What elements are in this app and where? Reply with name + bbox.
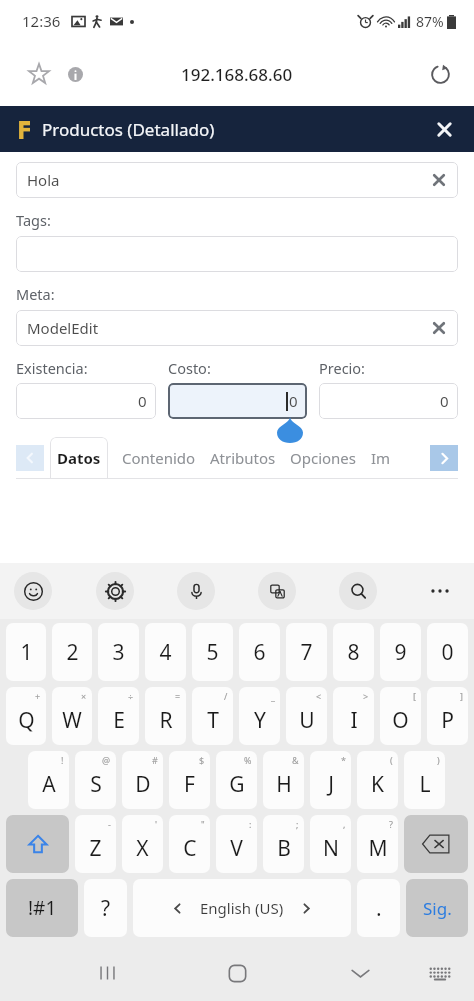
staticText: ] bbox=[460, 690, 463, 702]
button[interactable]: 8 bbox=[333, 623, 374, 681]
button[interactable]: . bbox=[357, 879, 400, 937]
button[interactable]: Datos bbox=[50, 437, 108, 479]
button[interactable]: ? bbox=[84, 879, 127, 937]
button[interactable]: Change keyboard bbox=[420, 953, 460, 993]
button[interactable]: ; bbox=[263, 815, 304, 873]
button[interactable]: # bbox=[122, 751, 163, 809]
button[interactable]: Sig. bbox=[406, 879, 468, 937]
button[interactable]: Hola bbox=[16, 162, 458, 198]
button[interactable]: Reload bbox=[422, 56, 458, 92]
button[interactable]: = bbox=[145, 687, 186, 745]
button[interactable]: < bbox=[286, 687, 327, 745]
staticText: 3 bbox=[112, 638, 125, 667]
staticText: 1 bbox=[20, 638, 33, 667]
button[interactable]: 0 bbox=[319, 383, 458, 419]
button[interactable]: Backspace bbox=[404, 815, 468, 873]
staticText: !#1 bbox=[28, 895, 57, 921]
button[interactable]: $ bbox=[169, 751, 210, 809]
button[interactable]: Keyboard settings bbox=[96, 572, 134, 610]
button[interactable]: 6 bbox=[239, 623, 280, 681]
button[interactable]: 1 bbox=[6, 623, 46, 681]
staticText: × bbox=[81, 690, 87, 702]
staticText: B bbox=[277, 834, 291, 863]
staticText: ) bbox=[437, 754, 440, 766]
button[interactable]: ' bbox=[122, 815, 163, 873]
button[interactable]: , bbox=[310, 815, 351, 873]
button[interactable]: Clear text bbox=[428, 169, 450, 191]
button[interactable]: Im bbox=[371, 437, 391, 479]
staticText: . bbox=[376, 894, 382, 923]
button[interactable]: English (US) bbox=[133, 879, 351, 937]
button[interactable]: Recent apps bbox=[85, 951, 129, 995]
button[interactable]: Previous tabs bbox=[16, 445, 44, 471]
staticText: Q bbox=[18, 706, 35, 735]
staticText: + bbox=[35, 690, 41, 702]
button[interactable]: Translate bbox=[258, 572, 296, 610]
staticText: Sig. bbox=[423, 897, 452, 920]
button[interactable]: Atributos bbox=[210, 437, 276, 479]
button[interactable]: Home bbox=[214, 950, 260, 996]
button[interactable]: 4 bbox=[145, 623, 186, 681]
staticText: % bbox=[244, 754, 252, 766]
button[interactable]: Next tabs bbox=[430, 445, 458, 471]
staticText: English (US) bbox=[200, 898, 284, 918]
staticText: L bbox=[419, 770, 431, 799]
staticText: 0 bbox=[289, 391, 298, 411]
button[interactable]: 0 bbox=[168, 383, 307, 419]
button[interactable]: Contenido bbox=[122, 437, 196, 479]
button[interactable]: + bbox=[6, 687, 46, 745]
button[interactable]: 5 bbox=[192, 623, 233, 681]
staticText: 2 bbox=[66, 638, 79, 667]
staticText: ' bbox=[155, 818, 158, 830]
staticText: 0 bbox=[441, 638, 454, 667]
staticText: F bbox=[184, 770, 195, 799]
button[interactable]: 2 bbox=[52, 623, 92, 681]
button[interactable]: [ bbox=[380, 687, 421, 745]
button[interactable]: : bbox=[216, 815, 257, 873]
button[interactable]: ? bbox=[357, 815, 398, 873]
button[interactable]: Emoji bbox=[14, 572, 52, 610]
button[interactable]: & bbox=[263, 751, 304, 809]
button[interactable]: " bbox=[169, 815, 210, 873]
button[interactable]: Voice input bbox=[177, 572, 215, 610]
button[interactable]: × bbox=[52, 687, 92, 745]
button[interactable]: 7 bbox=[286, 623, 327, 681]
button[interactable]: ) bbox=[404, 751, 445, 809]
staticText: ( bbox=[390, 754, 393, 766]
staticText: ! bbox=[61, 754, 64, 766]
staticText: 12:36 bbox=[22, 11, 61, 31]
button[interactable]: Bookmark bbox=[22, 57, 56, 91]
button[interactable]: 3 bbox=[98, 623, 139, 681]
staticText: Precio: bbox=[319, 358, 366, 378]
staticText: C bbox=[183, 834, 197, 863]
button[interactable]: !#1 bbox=[6, 879, 78, 937]
button[interactable]: 9 bbox=[380, 623, 421, 681]
button[interactable]: 0 bbox=[427, 623, 468, 681]
button[interactable]: Shift bbox=[6, 815, 69, 873]
staticText: > bbox=[363, 690, 369, 702]
button[interactable]: * bbox=[310, 751, 351, 809]
button[interactable]: / bbox=[192, 687, 233, 745]
button[interactable]: - bbox=[75, 815, 116, 873]
button[interactable]: More options bbox=[420, 571, 460, 611]
button[interactable]: Hide keyboard bbox=[338, 951, 382, 995]
button[interactable]: _ bbox=[239, 687, 280, 745]
staticText: D bbox=[135, 770, 151, 799]
button[interactable]: Clear text bbox=[428, 317, 450, 339]
button[interactable]: Site information bbox=[60, 59, 90, 89]
button[interactable]: % bbox=[216, 751, 257, 809]
button[interactable]: ! bbox=[28, 751, 69, 809]
button[interactable]: > bbox=[333, 687, 374, 745]
button[interactable]: @ bbox=[75, 751, 116, 809]
button[interactable]: Close bbox=[426, 111, 462, 147]
button[interactable]: ÷ bbox=[98, 687, 139, 745]
button[interactable]: 0 bbox=[16, 383, 156, 419]
button[interactable]: ModelEdit bbox=[16, 310, 458, 346]
staticText: 9 bbox=[394, 638, 407, 667]
button[interactable]: ] bbox=[427, 687, 468, 745]
staticText: V bbox=[230, 834, 243, 863]
button[interactable]: ( bbox=[357, 751, 398, 809]
button[interactable]: Opciones bbox=[290, 437, 357, 479]
button[interactable]: Search bbox=[339, 572, 377, 610]
button[interactable] bbox=[16, 236, 458, 272]
